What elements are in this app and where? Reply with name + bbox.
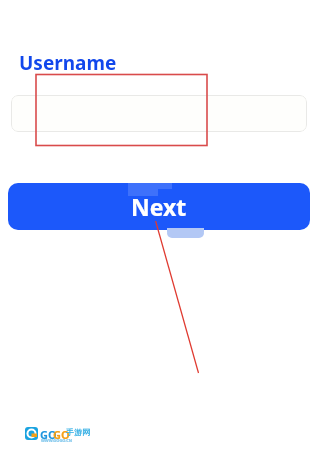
- staticText: GO: [53, 427, 70, 442]
- staticText: Username: [19, 50, 117, 76]
- staticText: GO: [40, 427, 57, 442]
- staticText: Next: [131, 191, 187, 222]
- button[interactable]: Next: [8, 183, 310, 230]
- button[interactable]: Username input field: [11, 95, 307, 132]
- staticText: WWW.GOGO.CN: [41, 438, 73, 443]
- staticText: 手游网: [66, 427, 90, 437]
